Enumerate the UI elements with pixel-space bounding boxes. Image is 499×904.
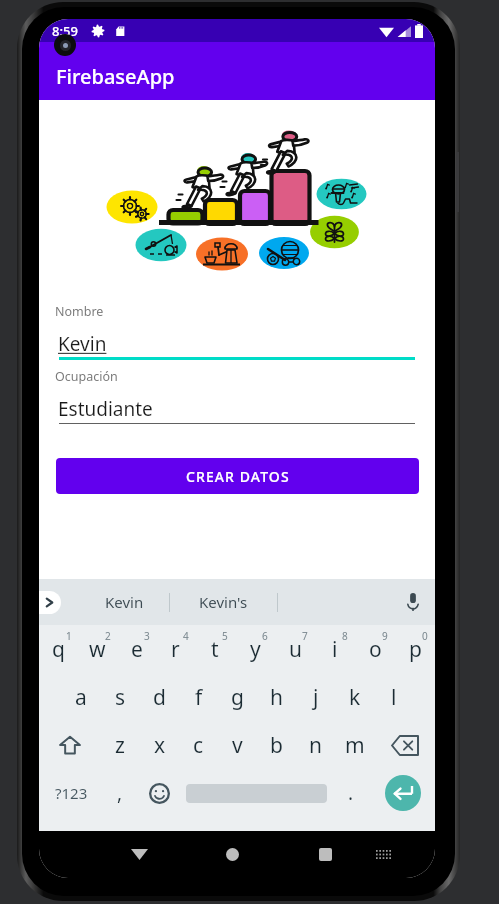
staticText: p: [409, 635, 422, 664]
button[interactable]: k: [335, 673, 374, 721]
button[interactable]: d: [140, 673, 179, 721]
button[interactable]: ,: [103, 769, 137, 817]
button[interactable]: [181, 769, 331, 817]
button[interactable]: h: [257, 673, 296, 721]
button[interactable]: Kevin: [79, 579, 169, 625]
button[interactable]: l: [374, 673, 413, 721]
staticText: Nombre: [55, 303, 104, 320]
staticText: .: [348, 780, 354, 806]
staticText: l: [391, 683, 397, 712]
button[interactable]: n: [296, 721, 335, 769]
staticText: 7: [302, 629, 308, 643]
button[interactable]: s: [101, 673, 140, 721]
staticText: j: [313, 683, 319, 712]
staticText: 4: [183, 629, 189, 643]
button[interactable]: u: [275, 625, 315, 673]
staticText: Kevin: [105, 592, 144, 612]
button[interactable]: ?123: [39, 769, 103, 817]
staticText: c: [193, 731, 204, 760]
button[interactable]: Kevin's: [170, 579, 277, 625]
staticText: e: [131, 635, 143, 664]
staticText: g: [231, 683, 244, 712]
button[interactable]: q: [39, 625, 78, 673]
staticText: ,: [117, 780, 123, 806]
staticText: n: [309, 731, 322, 760]
staticText: w: [89, 635, 106, 664]
button[interactable]: a: [61, 673, 101, 721]
button[interactable]: Emoji: [137, 769, 181, 817]
staticText: Kevin's: [199, 592, 248, 612]
button[interactable]: Backspace: [374, 721, 435, 769]
staticText: Estudiante: [58, 396, 153, 422]
staticText: a: [75, 683, 87, 712]
staticText: 3: [144, 629, 150, 643]
button[interactable]: g: [218, 673, 257, 721]
button[interactable]: Recents: [296, 831, 354, 878]
staticText: v: [232, 731, 243, 760]
staticText: f: [195, 683, 203, 712]
button[interactable]: i: [315, 625, 355, 673]
staticText: 8:59: [52, 22, 78, 40]
staticText: o: [369, 635, 382, 664]
button[interactable]: p: [395, 625, 435, 673]
button[interactable]: Back: [110, 831, 168, 878]
button[interactable]: .: [331, 769, 371, 817]
button[interactable]: CREAR DATOS: [56, 458, 419, 494]
staticText: m: [345, 731, 365, 760]
button[interactable]: v: [218, 721, 257, 769]
staticText: y: [250, 635, 261, 664]
staticText: u: [289, 635, 302, 664]
staticText: 1: [66, 629, 72, 643]
button[interactable]: b: [257, 721, 296, 769]
staticText: 6: [262, 629, 268, 643]
staticText: x: [154, 731, 166, 760]
staticText: t: [211, 635, 219, 664]
button[interactable]: Switch keyboard: [354, 831, 412, 878]
staticText: Kevin: [58, 331, 107, 357]
staticText: r: [171, 635, 180, 664]
button[interactable]: t: [195, 625, 235, 673]
button[interactable]: r: [156, 625, 195, 673]
button[interactable]: Enter: [371, 769, 435, 817]
staticText: ?123: [55, 783, 88, 803]
button[interactable]: c: [179, 721, 218, 769]
button[interactable]: f: [179, 673, 218, 721]
button[interactable]: e: [117, 625, 156, 673]
button[interactable]: y: [235, 625, 275, 673]
button[interactable]: Voice input: [391, 580, 435, 624]
button[interactable]: z: [100, 721, 140, 769]
button[interactable]: Home: [203, 831, 261, 878]
other: Settings: [91, 24, 105, 38]
button[interactable]: x: [140, 721, 179, 769]
button[interactable]: w: [78, 625, 117, 673]
staticText: FirebaseApp: [56, 63, 175, 90]
staticText: CREAR DATOS: [186, 467, 290, 486]
staticText: h: [270, 683, 283, 712]
staticText: Ocupación: [55, 368, 118, 385]
button[interactable]: Shift: [39, 721, 100, 769]
staticText: k: [349, 683, 361, 712]
button[interactable]: Expand suggestions: [39, 591, 61, 614]
staticText: 5: [222, 629, 228, 643]
staticText: z: [115, 731, 125, 760]
staticText: d: [153, 683, 166, 712]
staticText: 9: [382, 629, 388, 643]
staticText: s: [115, 683, 126, 712]
staticText: 0: [422, 629, 428, 643]
staticText: b: [270, 731, 283, 760]
button[interactable]: j: [296, 673, 335, 721]
button[interactable]: m: [335, 721, 374, 769]
button[interactable]: o: [355, 625, 395, 673]
staticText: 2: [105, 629, 111, 643]
staticText: 8: [342, 629, 348, 643]
staticText: i: [332, 635, 338, 664]
staticText: q: [52, 635, 65, 664]
